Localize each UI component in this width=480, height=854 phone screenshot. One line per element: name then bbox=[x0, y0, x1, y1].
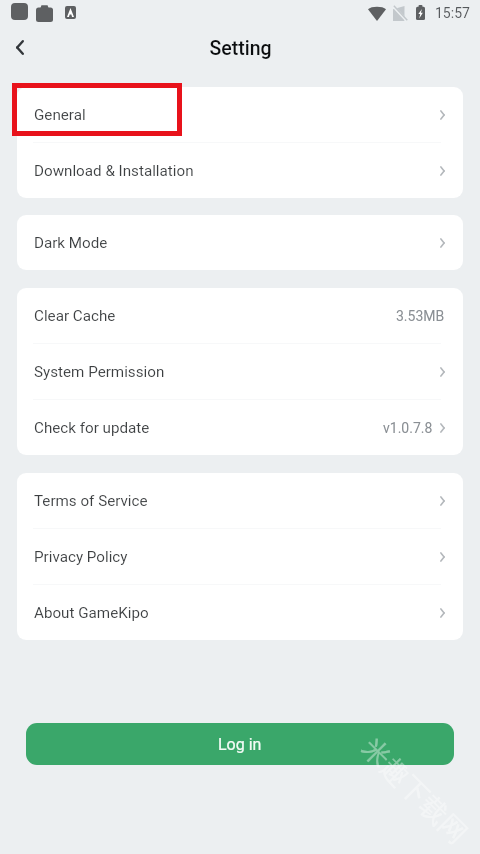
button[interactable]: Back bbox=[0, 26, 41, 68]
staticText: Terms of Service bbox=[34, 492, 148, 510]
staticText: Download & Installation bbox=[34, 162, 194, 180]
button[interactable]: Terms of Service bbox=[17, 473, 463, 528]
staticText: About GameKipo bbox=[34, 604, 149, 622]
button[interactable]: Check for update bbox=[17, 400, 463, 455]
staticText: 3.53MB bbox=[396, 308, 445, 324]
button[interactable]: Privacy Policy bbox=[17, 529, 463, 584]
button[interactable]: Clear Cache bbox=[17, 288, 463, 343]
staticText: 15:57 bbox=[435, 5, 470, 21]
button[interactable]: Download & Installation bbox=[17, 143, 463, 198]
staticText: System Permission bbox=[34, 363, 165, 381]
button[interactable]: Log in bbox=[26, 723, 454, 765]
staticText: General bbox=[34, 106, 86, 124]
button[interactable]: Dark Mode bbox=[17, 215, 463, 270]
staticText: Check for update bbox=[34, 419, 150, 437]
button[interactable]: System Permission bbox=[17, 344, 463, 399]
staticText: v1.0.7.8 bbox=[383, 420, 433, 436]
staticText: Log in bbox=[218, 735, 262, 754]
staticText: Privacy Policy bbox=[34, 548, 128, 566]
staticText: Setting bbox=[209, 37, 272, 60]
staticText: 米趣下载网 bbox=[355, 731, 474, 851]
staticText: Dark Mode bbox=[34, 234, 108, 252]
button[interactable]: General bbox=[17, 87, 463, 142]
staticText: Clear Cache bbox=[34, 307, 116, 325]
button[interactable]: About GameKipo bbox=[17, 585, 463, 640]
